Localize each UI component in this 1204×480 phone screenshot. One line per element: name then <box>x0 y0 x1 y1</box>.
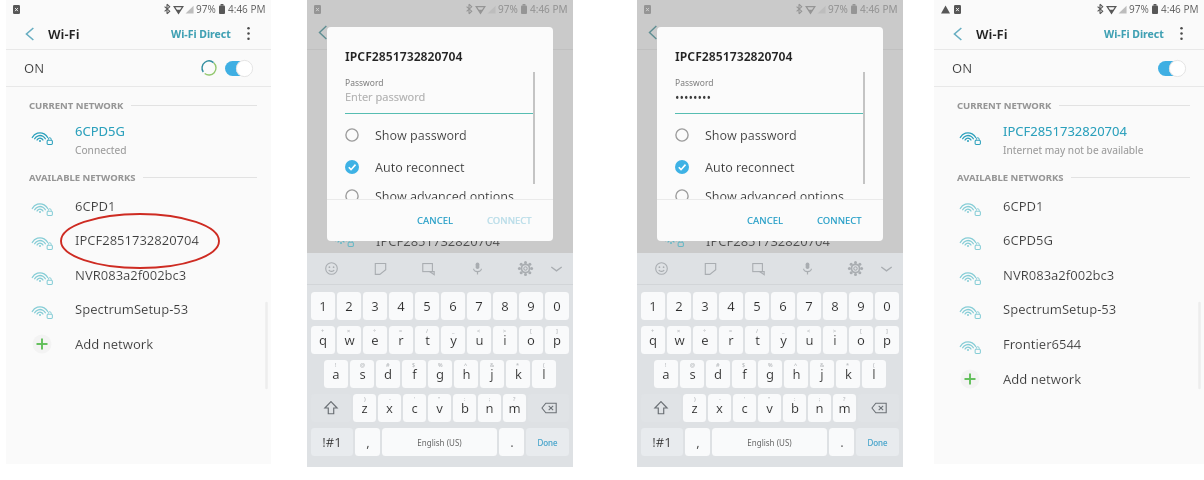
button[interactable]: 9 <box>849 292 873 320</box>
button[interactable]: 1 <box>311 292 335 320</box>
button[interactable]: 5 <box>415 292 439 320</box>
button[interactable]: Frontier6544 <box>934 327 1204 361</box>
button[interactable]: ON <box>6 50 271 86</box>
button[interactable]: CANCEL <box>739 205 792 236</box>
button[interactable]: @ <box>680 360 704 388</box>
button[interactable]: Keyboard settings <box>514 253 536 284</box>
button[interactable]: 1 <box>641 292 665 320</box>
button[interactable]: ÷ <box>363 326 387 354</box>
button[interactable]: 5 <box>745 292 769 320</box>
button[interactable]: _ <box>441 326 465 354</box>
button[interactable]: ? <box>503 394 526 422</box>
button[interactable]: 6CPD1 <box>934 189 1204 223</box>
button[interactable]: NVR083a2f002bc3 <box>934 258 1204 292</box>
button[interactable]: Stickers <box>369 253 391 284</box>
button[interactable]: : <box>453 394 476 422</box>
button[interactable]: . <box>829 428 854 456</box>
button[interactable]: Stickers <box>699 253 721 284</box>
button[interactable]: Auto reconnect <box>345 152 553 182</box>
button[interactable]: < <box>467 326 491 354</box>
button[interactable]: ! <box>324 360 348 388</box>
button[interactable]: = <box>719 326 743 354</box>
button[interactable]: 6CPD1 <box>6 189 271 223</box>
button[interactable]: Collapse keyboard <box>875 253 897 284</box>
button[interactable]: ( <box>862 360 886 388</box>
button[interactable]: Emoji <box>320 253 342 284</box>
button[interactable]: Add network <box>6 327 271 361</box>
button[interactable]: Shift <box>641 394 681 422</box>
button[interactable]: [ <box>519 326 543 354</box>
button[interactable]: Back <box>16 18 44 49</box>
button[interactable]: ! <box>654 360 678 388</box>
button[interactable]: , <box>685 428 710 456</box>
button[interactable]: Wi-Fi Direct <box>168 20 234 48</box>
button[interactable]: ) <box>683 394 706 422</box>
button[interactable]: . <box>499 428 524 456</box>
button[interactable]: ON <box>934 50 1204 86</box>
button[interactable]: 3 <box>693 292 717 320</box>
button[interactable]: 6 <box>771 292 795 320</box>
button[interactable]: ^ <box>784 360 808 388</box>
button[interactable]: English (US) <box>712 428 827 456</box>
button[interactable]: 9 <box>519 292 543 320</box>
button[interactable]: Wi-Fi on/off <box>1158 60 1186 77</box>
button[interactable]: Keyboard settings <box>844 253 866 284</box>
button[interactable]: × <box>667 326 691 354</box>
button[interactable]: CONNECT <box>809 205 870 236</box>
button[interactable]: 6CPD5G <box>6 116 271 158</box>
button[interactable]: / <box>745 326 769 354</box>
button[interactable]: 3 <box>363 292 387 320</box>
button[interactable]: * <box>836 360 860 388</box>
button[interactable]: ) <box>353 394 376 422</box>
button[interactable]: Wi-Fi Direct <box>1101 20 1167 48</box>
button[interactable]: CONNECT <box>479 205 540 236</box>
button[interactable]: ? <box>833 394 856 422</box>
button[interactable]: NVR083a2f002bc3 <box>6 258 271 292</box>
button[interactable]: ; <box>478 394 501 422</box>
button[interactable]: _ <box>771 326 795 354</box>
button[interactable]: 2 <box>337 292 361 320</box>
button[interactable]: = <box>389 326 413 354</box>
button[interactable]: Wi-Fi on/off <box>225 60 253 77</box>
button[interactable]: Backspace <box>528 394 569 422</box>
button[interactable]: GIF <box>747 253 769 284</box>
button[interactable]: < <box>797 326 821 354</box>
button[interactable]: Show advanced options <box>675 181 883 199</box>
button[interactable]: More options <box>238 18 258 49</box>
button[interactable]: > <box>493 326 517 354</box>
button[interactable]: + <box>311 326 335 354</box>
button[interactable]: Done <box>526 428 569 456</box>
button[interactable]: More options <box>1171 18 1191 49</box>
button[interactable]: 2 <box>667 292 691 320</box>
button[interactable]: ] <box>875 326 899 354</box>
button[interactable]: - <box>708 394 731 422</box>
button[interactable]: IPCF2851732820704 <box>6 223 271 257</box>
button[interactable]: SpectrumSetup-53 <box>934 292 1204 326</box>
button[interactable]: CANCEL <box>409 205 462 236</box>
button[interactable]: 7 <box>467 292 491 320</box>
button[interactable]: ' <box>733 394 756 422</box>
button[interactable]: Done <box>856 428 899 456</box>
button[interactable]: > <box>823 326 847 354</box>
button[interactable]: Auto reconnect <box>675 152 883 182</box>
button[interactable]: # <box>376 360 400 388</box>
button[interactable]: $ <box>732 360 756 388</box>
button[interactable]: Add network <box>934 362 1204 396</box>
button[interactable]: ] <box>545 326 569 354</box>
button[interactable]: English (US) <box>382 428 497 456</box>
button[interactable]: Back <box>944 18 972 49</box>
button[interactable]: Show password <box>675 120 883 150</box>
button[interactable]: 4 <box>719 292 743 320</box>
button[interactable]: 8 <box>493 292 517 320</box>
button[interactable]: ÷ <box>693 326 717 354</box>
button[interactable]: % <box>758 360 782 388</box>
button[interactable]: * <box>506 360 530 388</box>
button[interactable]: ( <box>532 360 556 388</box>
button[interactable]: & <box>480 360 504 388</box>
button[interactable]: @ <box>350 360 374 388</box>
button[interactable]: 8 <box>823 292 847 320</box>
button[interactable]: 6CPD5G <box>934 223 1204 257</box>
button[interactable]: Backspace <box>858 394 899 422</box>
button[interactable]: 4 <box>389 292 413 320</box>
button[interactable]: + <box>641 326 665 354</box>
